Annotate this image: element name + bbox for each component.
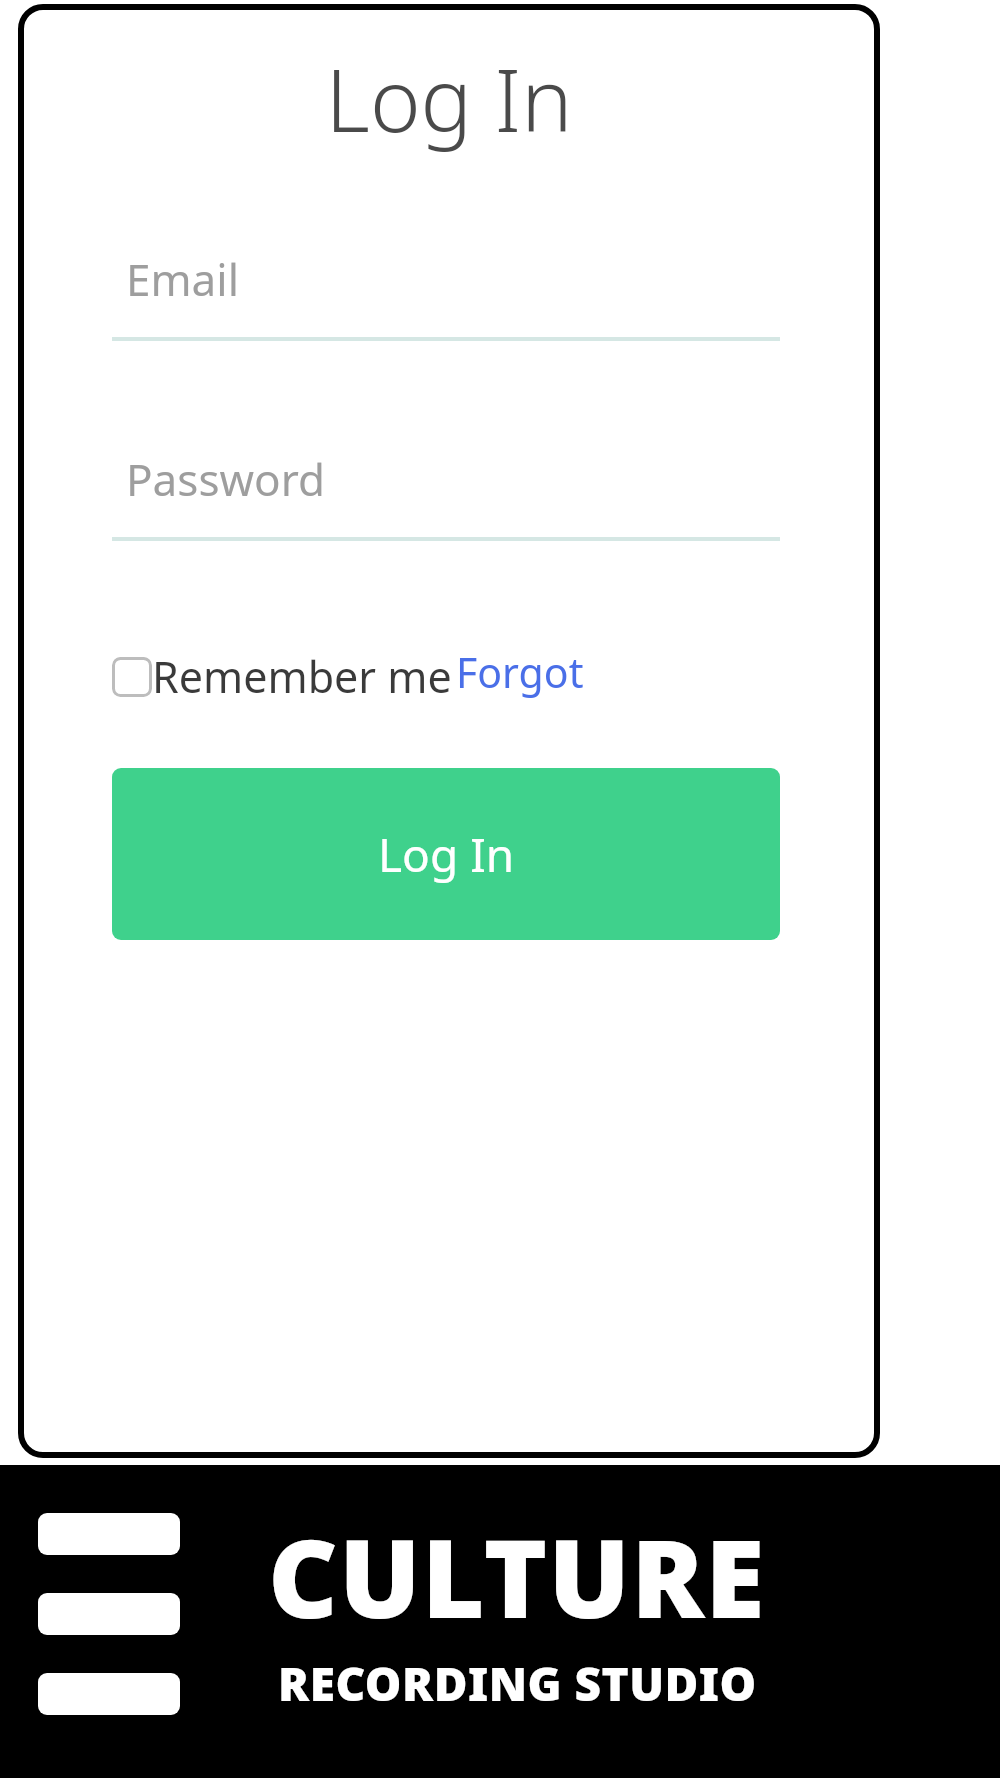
button[interactable]: Password [112,449,780,541]
staticText: Forgot password? [456,644,780,708]
button[interactable]: Menu [38,1513,180,1715]
staticText: CULTURE [268,1503,766,1650]
staticText: Email [126,249,239,309]
staticText: Log In [378,823,515,886]
button[interactable]: Remember me [112,647,456,706]
staticText: Password [126,449,326,509]
staticText: Remember me [152,647,452,706]
staticText: Log In [18,40,880,157]
button[interactable]: Log In [112,768,780,940]
button[interactable]: Email [112,249,780,341]
button[interactable]: Forgot password? [456,644,780,708]
staticText: RECORDING STUDIO [278,1652,757,1715]
